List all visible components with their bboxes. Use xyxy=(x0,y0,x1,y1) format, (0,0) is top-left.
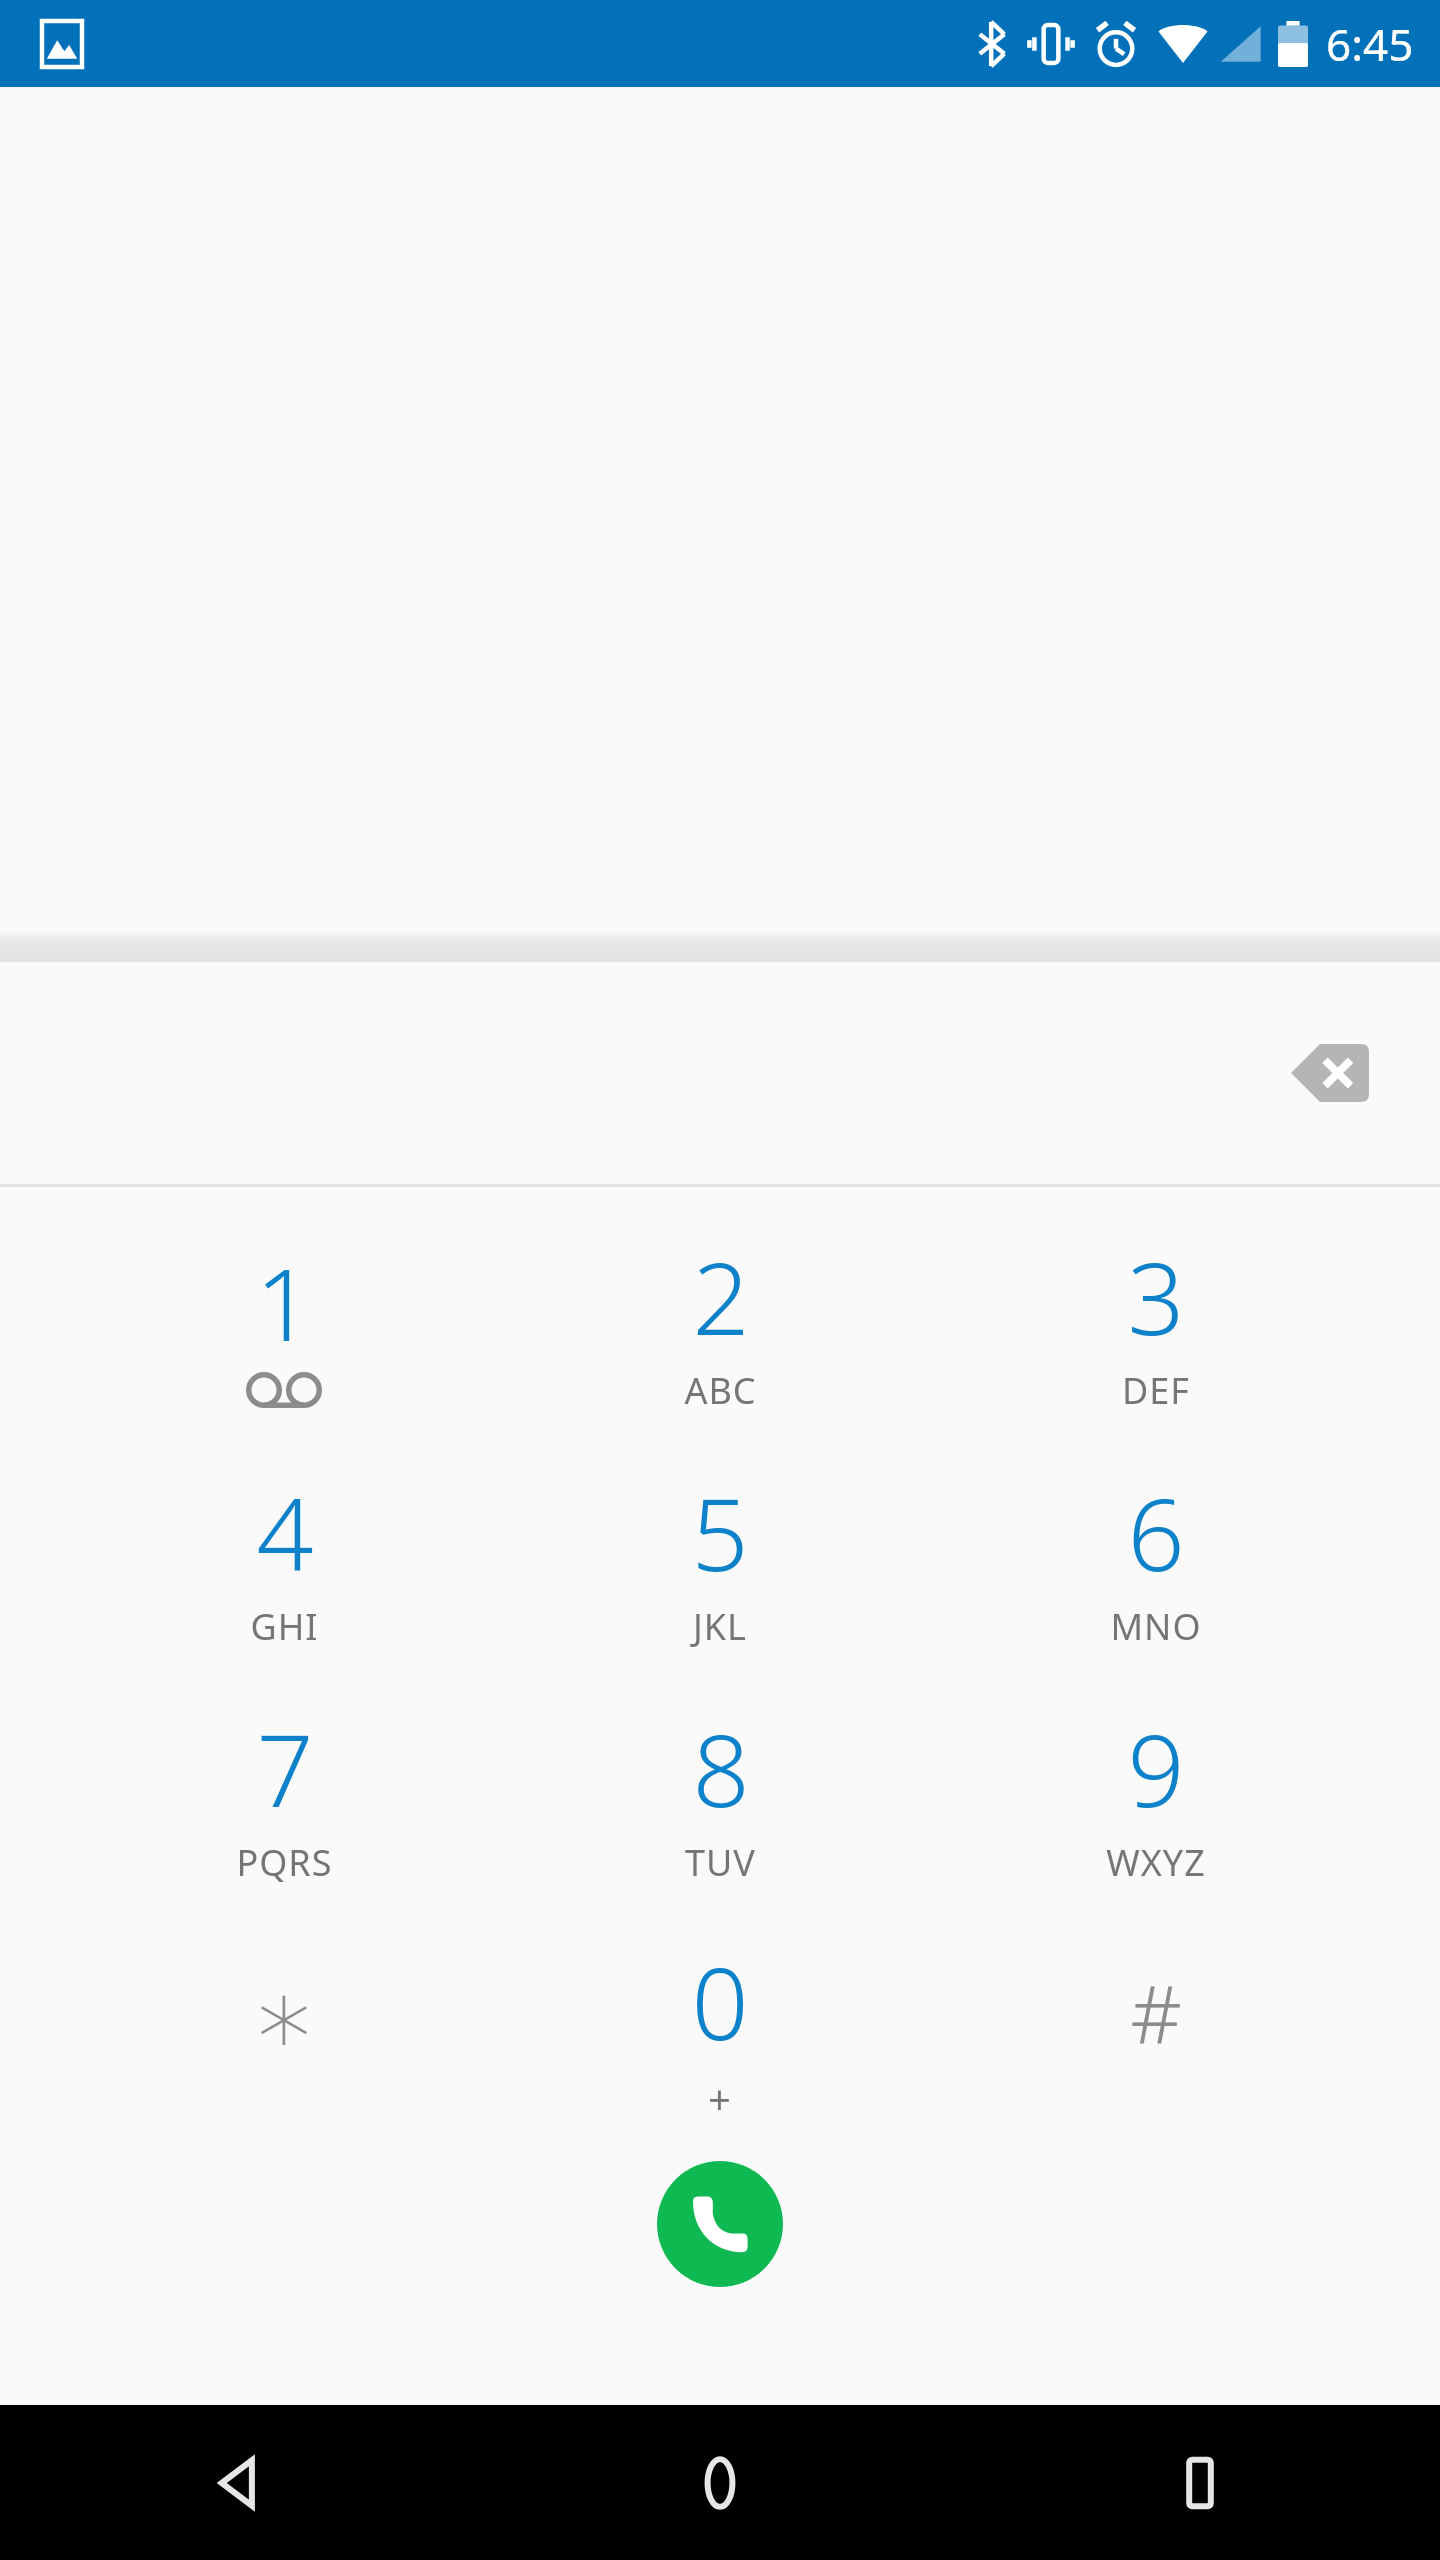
staticText: DEF xyxy=(1122,1366,1190,1415)
button[interactable]: 7 xyxy=(66,1675,502,1911)
staticText: MNO xyxy=(1110,1602,1202,1651)
staticText: 4 xyxy=(256,1464,314,1600)
staticText: 7 xyxy=(256,1700,314,1836)
button[interactable]: # xyxy=(938,1911,1374,2147)
button[interactable]: 9 xyxy=(938,1675,1374,1911)
button[interactable]: Home xyxy=(480,2405,960,2560)
staticText: 8 xyxy=(692,1700,750,1836)
button[interactable]: Backspace xyxy=(1272,1025,1388,1121)
staticText: WXYZ xyxy=(1106,1838,1206,1887)
staticText: 6:45 xyxy=(1326,14,1414,74)
button[interactable]: 5 xyxy=(502,1439,938,1675)
staticText: 2 xyxy=(692,1228,750,1364)
button[interactable]: 6 xyxy=(938,1439,1374,1675)
button[interactable]: Call xyxy=(657,2161,783,2287)
staticText: 5 xyxy=(691,1464,749,1600)
staticText: 9 xyxy=(1127,1700,1185,1836)
staticText: # xyxy=(1130,1957,1182,2066)
staticText: ∗ xyxy=(250,1954,318,2080)
button[interactable]: 4 xyxy=(66,1439,502,1675)
staticText: GHI xyxy=(250,1602,319,1651)
button[interactable]: 2 xyxy=(502,1203,938,1439)
staticText: 6 xyxy=(1127,1464,1185,1600)
button[interactable]: 8 xyxy=(502,1675,938,1911)
staticText: JKL xyxy=(693,1602,747,1651)
staticText: 1 xyxy=(255,1234,313,1370)
staticText: ABC xyxy=(684,1366,757,1415)
button[interactable]: 3 xyxy=(938,1203,1374,1439)
button[interactable]: ∗ xyxy=(66,1911,502,2147)
button[interactable]: Recents xyxy=(960,2405,1440,2560)
button[interactable]: 1 xyxy=(66,1203,502,1439)
staticText: 0 xyxy=(691,1933,749,2069)
staticText: + xyxy=(708,2071,732,2125)
staticText: PQRS xyxy=(236,1838,333,1887)
staticText: TUV xyxy=(685,1838,756,1887)
button[interactable]: 0 xyxy=(502,1911,938,2147)
button[interactable]: Back xyxy=(0,2405,480,2560)
staticText: 3 xyxy=(1127,1228,1185,1364)
